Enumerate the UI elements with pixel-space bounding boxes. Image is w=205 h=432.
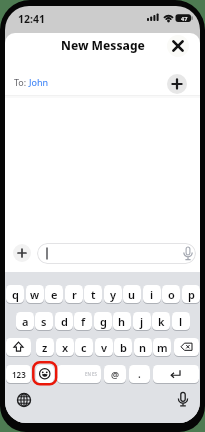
staticText: a: [22, 314, 29, 329]
staticText: m: [157, 340, 168, 355]
staticText: y: [110, 287, 117, 302]
button[interactable]: a: [16, 312, 34, 330]
button[interactable]: v: [95, 338, 113, 356]
staticText: q: [12, 287, 19, 302]
button[interactable]: y: [104, 285, 122, 303]
staticText: To:: [14, 76, 29, 88]
button[interactable]: j: [133, 312, 151, 330]
button[interactable]: c: [75, 338, 93, 356]
staticText: z: [42, 340, 48, 355]
staticText: h: [118, 314, 126, 329]
button[interactable]: u: [123, 285, 141, 303]
button[interactable]: q: [6, 285, 24, 303]
button[interactable]: o: [162, 285, 180, 303]
button[interactable]: [153, 365, 199, 383]
button[interactable]: To:: [5, 70, 200, 93]
staticText: s: [41, 314, 47, 329]
staticText: c: [81, 340, 87, 355]
staticText: x: [62, 340, 69, 355]
button[interactable]: z: [36, 338, 54, 356]
button[interactable]: 123: [6, 365, 31, 383]
button[interactable]: p: [182, 285, 200, 303]
button[interactable]: h: [113, 312, 131, 330]
staticText: EN ES: [85, 371, 98, 377]
staticText: d: [61, 314, 68, 329]
button[interactable]: w: [26, 285, 44, 303]
staticText: t: [91, 287, 96, 302]
staticText: 47: [181, 15, 188, 22]
button[interactable]: x: [56, 338, 74, 356]
button[interactable]: [174, 338, 199, 356]
staticText: i: [150, 287, 154, 302]
staticText: e: [51, 287, 58, 302]
button[interactable]: g: [94, 312, 112, 330]
button[interactable]: b: [114, 338, 132, 356]
staticText: n: [139, 340, 147, 355]
button[interactable]: i: [143, 285, 161, 303]
staticText: p: [188, 287, 195, 302]
staticText: l: [179, 314, 183, 329]
button[interactable]: [13, 244, 31, 262]
button[interactable]: [37, 243, 196, 264]
button[interactable]: n: [134, 338, 152, 356]
button[interactable]: [175, 392, 191, 408]
staticText: f: [81, 314, 86, 329]
button[interactable]: f: [74, 312, 92, 330]
button[interactable]: d: [55, 312, 73, 330]
button[interactable]: e: [45, 285, 63, 303]
button[interactable]: [6, 338, 31, 356]
staticText: v: [101, 340, 108, 355]
button[interactable]: t: [84, 285, 102, 303]
button[interactable]: [16, 392, 32, 408]
button[interactable]: m: [153, 338, 171, 356]
staticText: 123: [12, 369, 26, 380]
staticText: w: [30, 287, 40, 302]
staticText: u: [128, 287, 136, 302]
button[interactable]: r: [65, 285, 83, 303]
button[interactable]: [167, 74, 187, 94]
staticText: 12:41: [18, 12, 45, 26]
staticText: o: [168, 287, 175, 302]
staticText: New Message: [61, 37, 145, 53]
staticText: John: [29, 76, 49, 88]
staticText: .: [138, 367, 141, 381]
staticText: @: [111, 368, 120, 380]
button[interactable]: [36, 365, 54, 383]
staticText: k: [158, 314, 165, 329]
button[interactable]: .: [129, 365, 150, 383]
staticText: g: [100, 314, 107, 329]
button[interactable]: [167, 35, 189, 57]
button[interactable]: s: [35, 312, 53, 330]
button[interactable]: l: [172, 312, 190, 330]
staticText: r: [72, 287, 77, 302]
staticText: j: [140, 314, 144, 329]
button[interactable]: k: [152, 312, 170, 330]
button[interactable]: @: [104, 365, 126, 383]
staticText: b: [120, 340, 127, 355]
button[interactable]: [57, 365, 101, 383]
